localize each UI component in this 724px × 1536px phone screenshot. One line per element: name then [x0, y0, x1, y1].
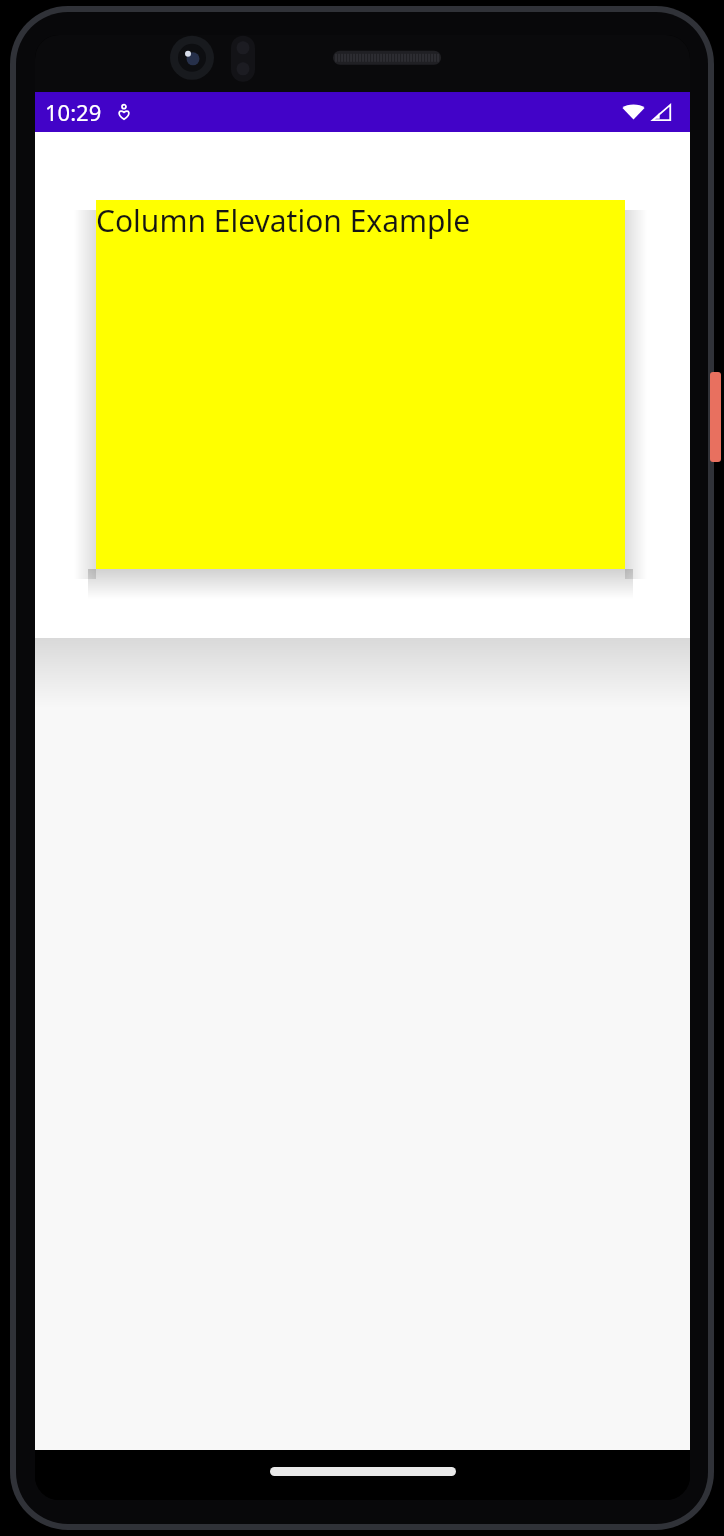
other: Location sharing: [116, 104, 132, 120]
other: Wi-Fi: [622, 101, 645, 124]
button[interactable]: Column Elevation Example: [35, 132, 690, 638]
staticText: 10:29: [45, 97, 102, 127]
button[interactable]: Home gesture bar: [270, 1467, 456, 1476]
button[interactable]: Column Elevation Example: [96, 200, 625, 569]
other: Mobile signal: [650, 101, 673, 124]
staticText: Column Elevation Example: [96, 200, 471, 241]
